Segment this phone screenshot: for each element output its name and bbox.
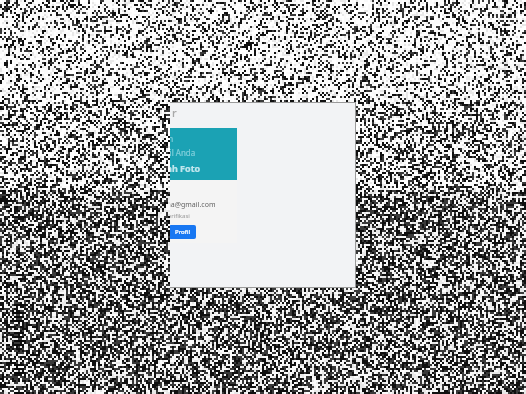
staticText: Akun — [170, 133, 174, 144]
button[interactable]: Akun — [170, 128, 237, 243]
staticText: Profil Anda — [170, 147, 196, 158]
staticText: Profil — [175, 228, 191, 236]
staticText: Ubah Foto Profil — [170, 162, 221, 174]
staticText: nama@gmail.com — [170, 200, 216, 210]
staticText: Terverifikasi — [170, 212, 190, 220]
staticText: r — [172, 105, 177, 120]
button[interactable]: Ubah Profil — [170, 225, 196, 239]
